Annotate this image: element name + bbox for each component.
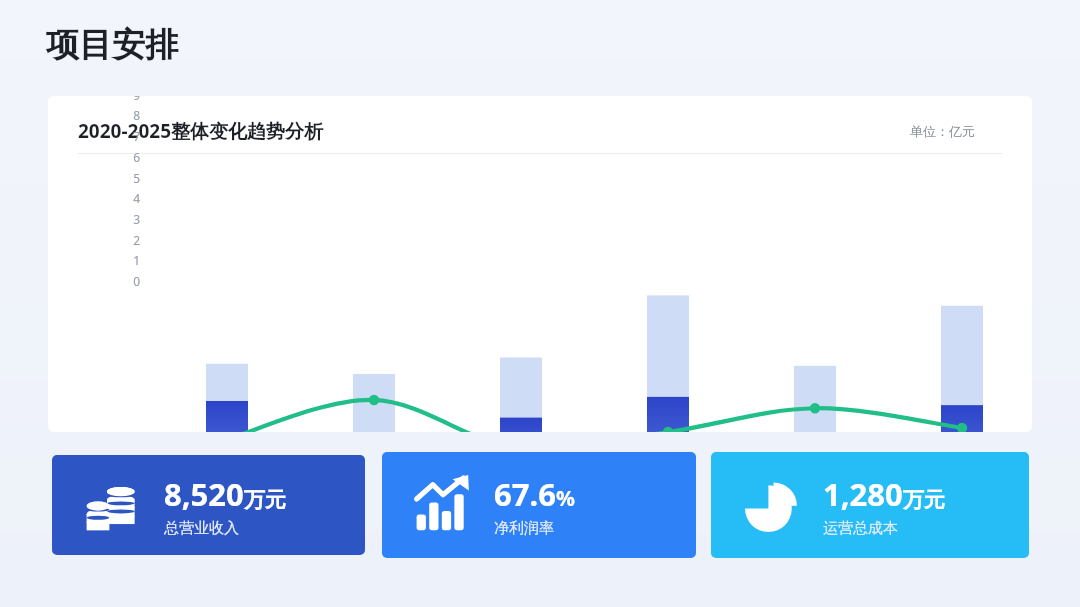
staticText: 7 bbox=[122, 128, 140, 144]
staticText: 总营业收入 bbox=[164, 519, 239, 538]
staticText: 67.6 bbox=[494, 473, 556, 515]
staticText: 9 bbox=[122, 96, 140, 103]
staticText: 万元 bbox=[903, 487, 945, 513]
staticText: 1 bbox=[122, 252, 140, 268]
staticText: % bbox=[556, 484, 575, 513]
other: 总营业收入 bbox=[80, 472, 146, 538]
staticText: 项目安排 bbox=[46, 24, 178, 66]
other: 净利润率 bbox=[410, 472, 476, 538]
button[interactable]: 2020-2025整体变化趋势分析 bbox=[48, 96, 1032, 432]
staticText: 4 bbox=[122, 190, 140, 206]
staticText: 8 bbox=[122, 107, 140, 123]
staticText: 1,280 bbox=[823, 473, 903, 515]
staticText: 6 bbox=[122, 149, 140, 165]
staticText: 2020-2025整体变化趋势分析 bbox=[78, 118, 324, 144]
staticText: 万元 bbox=[244, 487, 286, 513]
staticText: 单位：亿元 bbox=[910, 123, 975, 139]
button[interactable]: 净利润率 bbox=[382, 452, 696, 558]
staticText: 0 bbox=[122, 273, 140, 289]
staticText: 5 bbox=[122, 170, 140, 186]
staticText: 8,520 bbox=[164, 473, 244, 515]
staticText: 2 bbox=[122, 232, 140, 248]
other: 运营总成本 bbox=[739, 472, 805, 538]
staticText: 3 bbox=[122, 211, 140, 227]
staticText: 净利润率 bbox=[494, 519, 554, 538]
button[interactable]: 运营总成本 bbox=[711, 452, 1029, 558]
staticText: 运营总成本 bbox=[823, 519, 898, 538]
button[interactable]: 总营业收入 bbox=[52, 455, 365, 555]
